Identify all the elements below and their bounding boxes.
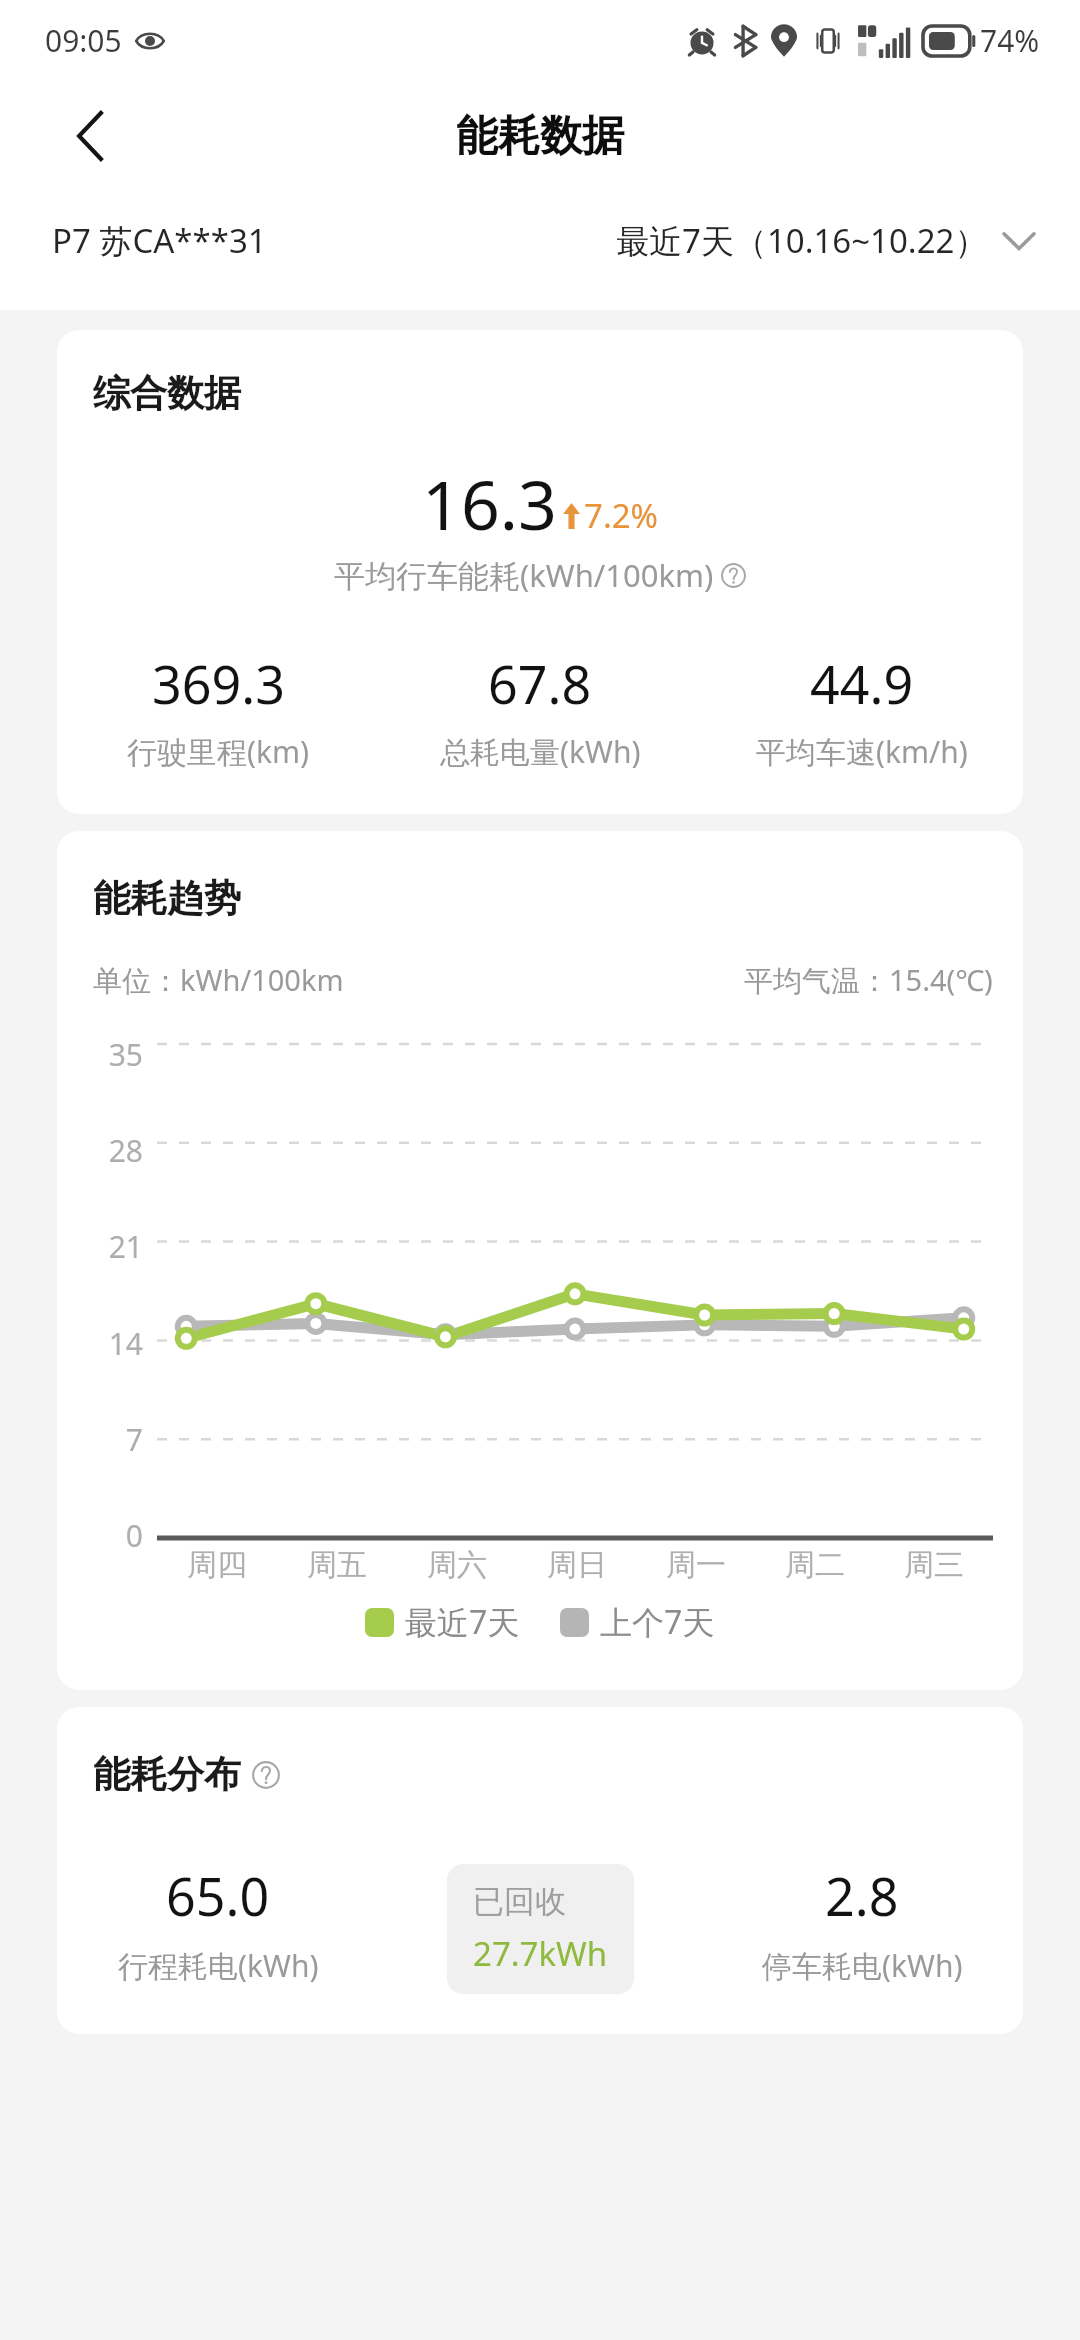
button[interactable]: 上个7天: [560, 1600, 715, 1644]
staticText: 44.9: [810, 648, 914, 719]
button[interactable]: 综合数据: [57, 330, 1023, 814]
staticText: 7: [125, 1419, 143, 1460]
staticText: 14: [108, 1323, 143, 1364]
staticText: P7 苏CA***31: [52, 218, 267, 263]
staticText: 周五: [307, 1546, 367, 1584]
staticText: 能耗分布: [93, 1751, 241, 1798]
staticText: 74%: [980, 20, 1040, 61]
staticText: 16.3: [422, 457, 557, 550]
staticText: 0: [125, 1515, 143, 1556]
staticText: 周六: [427, 1546, 487, 1584]
staticText: 最近7天: [405, 1600, 520, 1644]
staticText: 周一: [666, 1546, 726, 1584]
staticText: 单位：kWh/100km: [93, 960, 344, 1000]
button[interactable]: Back: [52, 98, 128, 174]
staticText: 65.0: [166, 1860, 270, 1931]
staticText: 67.8: [488, 648, 592, 719]
staticText: 平均车速(km/h): [756, 731, 968, 772]
staticText: 周四: [187, 1546, 247, 1584]
staticText: 能耗趋势: [93, 875, 241, 922]
staticText: 27.7kWh: [473, 1931, 608, 1976]
staticText: 7.2%: [584, 493, 659, 538]
staticText: 行驶里程(km): [127, 731, 310, 772]
staticText: 总耗电量(kWh): [440, 731, 641, 772]
staticText: 369.3: [152, 648, 285, 719]
staticText: 35: [108, 1034, 143, 1075]
staticText: 行程耗电(kWh): [118, 1945, 319, 1986]
staticText: 周二: [785, 1546, 845, 1584]
staticText: 09:05: [45, 20, 122, 61]
button[interactable]: 最近7天（10.16~10.22）: [616, 218, 1034, 263]
staticText: 停车耗电(kWh): [762, 1945, 963, 1986]
staticText: 2.8: [825, 1860, 899, 1931]
staticText: 周三: [904, 1546, 964, 1584]
button[interactable]: 能耗分布: [57, 1707, 1023, 2034]
staticText: 28: [108, 1130, 143, 1171]
staticText: 综合数据: [93, 370, 241, 417]
staticText: 能耗数据: [456, 110, 624, 163]
button[interactable]: 能耗趋势: [57, 831, 1023, 1690]
staticText: 已回收: [473, 1882, 566, 1921]
staticText: 平均气温：15.4(℃): [744, 960, 993, 1000]
button[interactable]: 最近7天: [365, 1600, 520, 1644]
staticText: 上个7天: [600, 1600, 715, 1644]
staticText: 周日: [547, 1546, 607, 1584]
staticText: 平均行车能耗(kWh/100km): [334, 554, 714, 596]
staticText: 最近7天（10.16~10.22）: [616, 218, 988, 263]
staticText: 21: [108, 1226, 143, 1267]
